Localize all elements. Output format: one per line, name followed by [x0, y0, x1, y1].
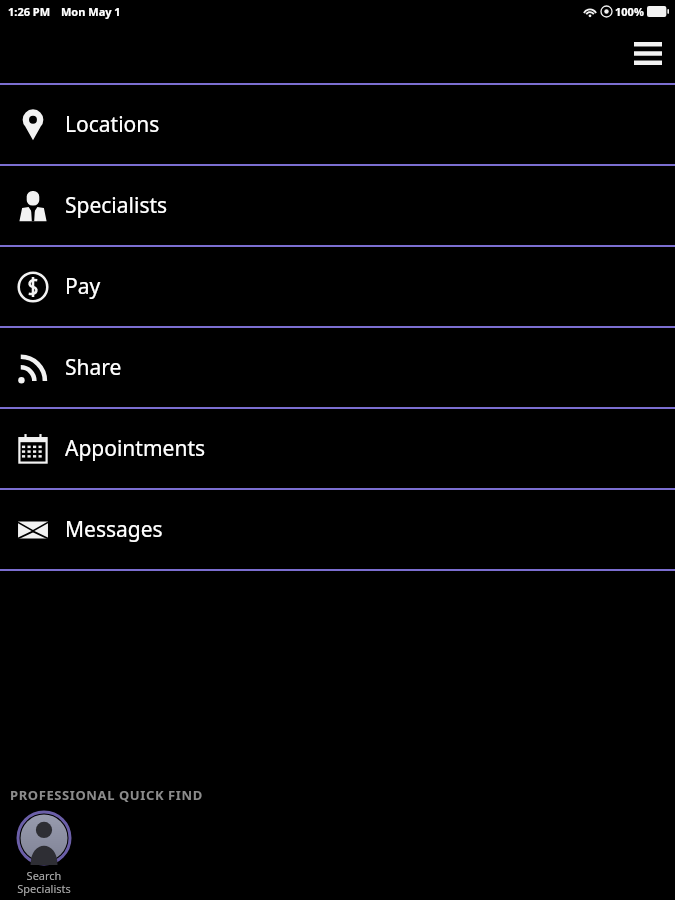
button[interactable]: Appointments: [0, 409, 675, 488]
staticText: 1:26 PM: [8, 4, 51, 19]
button[interactable]: Messages: [0, 490, 675, 569]
staticText: Locations: [65, 110, 160, 139]
staticText: Specialists: [65, 191, 168, 220]
button[interactable]: Specialists: [0, 166, 675, 245]
button[interactable]: Pay: [0, 247, 675, 326]
button[interactable]: Locations: [0, 85, 675, 164]
staticText: Search Specialists: [17, 868, 71, 896]
button[interactable]: Menu: [626, 31, 670, 75]
staticText: Share: [65, 353, 122, 382]
staticText: PROFESSIONAL QUICK FIND: [10, 786, 203, 804]
staticText: Pay: [65, 272, 101, 301]
staticText: Messages: [65, 515, 163, 544]
staticText: Mon May 1: [61, 4, 121, 19]
button[interactable]: Share: [0, 328, 675, 407]
button[interactable]: Search Specialists: [10, 811, 78, 896]
staticText: 100%: [615, 4, 644, 19]
staticText: Appointments: [65, 434, 206, 463]
